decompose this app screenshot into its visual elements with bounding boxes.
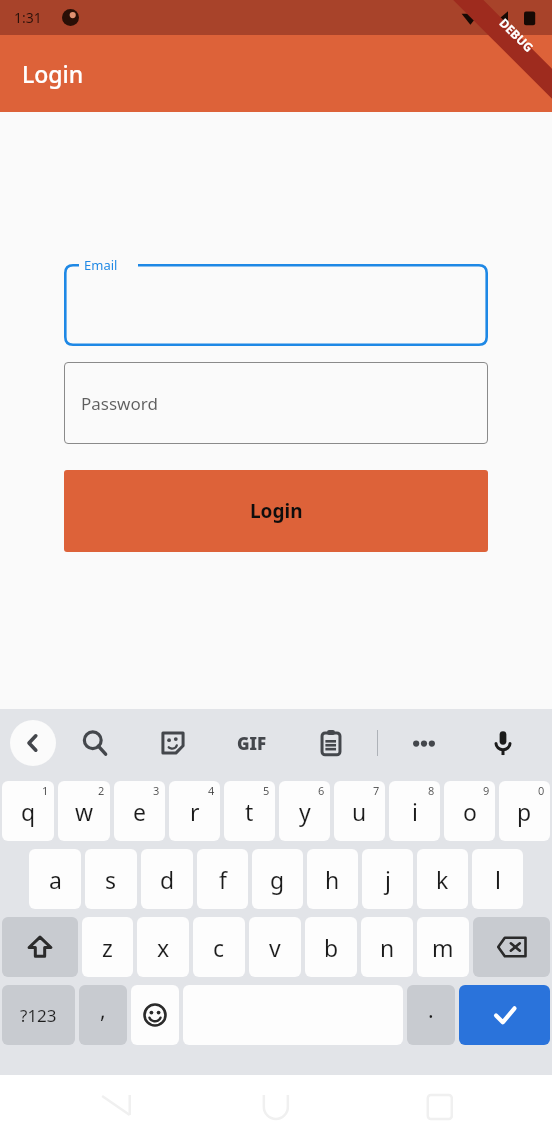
staticText: 0 — [538, 783, 545, 798]
button[interactable]: q — [2, 781, 54, 841]
staticText: ?123 — [20, 1004, 57, 1027]
staticText: , — [100, 996, 106, 1025]
staticText: Login — [250, 498, 303, 524]
staticText: m — [432, 932, 454, 963]
staticText: Email — [84, 256, 118, 274]
staticText: c — [213, 932, 225, 963]
button[interactable]: n — [361, 917, 413, 977]
button[interactable]: s — [85, 849, 137, 909]
staticText: p — [517, 796, 532, 827]
button[interactable]: c — [193, 917, 245, 977]
staticText: 7 — [373, 783, 380, 798]
staticText: k — [436, 864, 449, 895]
button[interactable]: Password — [64, 362, 488, 444]
button[interactable]: x — [137, 917, 189, 977]
staticText: o — [463, 796, 477, 827]
button[interactable]: i — [389, 781, 440, 841]
button[interactable]: f — [197, 849, 248, 909]
staticText: v — [269, 932, 281, 963]
staticText: x — [157, 932, 170, 963]
staticText: 5 — [263, 783, 270, 798]
staticText: u — [352, 796, 367, 827]
button[interactable]: r — [169, 781, 220, 841]
staticText: f — [219, 864, 227, 895]
button[interactable]: Login — [64, 470, 488, 552]
staticText: 1 — [42, 783, 49, 798]
button[interactable]: Clipboard — [291, 709, 370, 777]
staticText: y — [299, 796, 311, 827]
button[interactable]: o — [444, 781, 495, 841]
button[interactable]: p — [499, 781, 550, 841]
button[interactable]: Voice input — [463, 709, 542, 777]
staticText: s — [105, 864, 117, 895]
button[interactable]: d — [141, 849, 193, 909]
button[interactable]: Emoji — [131, 985, 179, 1045]
button[interactable]: h — [307, 849, 358, 909]
staticText: 9 — [483, 783, 490, 798]
button[interactable]: u — [334, 781, 385, 841]
staticText: e — [133, 796, 146, 827]
button[interactable]: ?123 — [2, 985, 75, 1045]
button[interactable]: Stickers — [134, 709, 212, 777]
staticText: g — [270, 864, 285, 895]
staticText: j — [385, 864, 391, 895]
staticText: Password — [81, 392, 158, 415]
button[interactable]: Search — [56, 709, 134, 777]
staticText: Login — [22, 58, 84, 89]
staticText: 3 — [153, 783, 160, 798]
staticText: d — [160, 864, 175, 895]
button[interactable]: z — [82, 917, 133, 977]
staticText: 1:31 — [14, 8, 42, 27]
staticText: n — [380, 932, 395, 963]
button[interactable]: Back — [10, 720, 56, 766]
staticText: h — [325, 864, 340, 895]
staticText: q — [21, 796, 36, 827]
staticText: . — [428, 996, 434, 1025]
button[interactable]: Backspace — [473, 917, 550, 977]
button[interactable]: y — [279, 781, 330, 841]
button[interactable]: Shift — [2, 917, 78, 977]
button[interactable]: b — [305, 917, 357, 977]
button[interactable]: w — [58, 781, 110, 841]
staticText: 2 — [98, 783, 105, 798]
button[interactable]: e — [114, 781, 165, 841]
staticText: w — [75, 796, 94, 827]
staticText: r — [190, 796, 200, 827]
staticText: t — [245, 796, 254, 827]
staticText: z — [102, 932, 113, 963]
staticText: GIF — [237, 732, 267, 755]
staticText: l — [495, 864, 501, 895]
button[interactable]: GIF — [212, 709, 291, 777]
staticText: DEBUG — [496, 14, 537, 55]
staticText: a — [49, 864, 62, 895]
button[interactable]: v — [249, 917, 301, 977]
button[interactable]: More options — [384, 709, 463, 777]
button[interactable]: j — [362, 849, 413, 909]
button[interactable]: Enter — [459, 985, 550, 1045]
button[interactable]: m — [417, 917, 469, 977]
staticText: 6 — [318, 783, 325, 798]
staticText: i — [412, 796, 418, 827]
staticText: 4 — [208, 783, 215, 798]
button[interactable]: . — [407, 985, 455, 1045]
staticText: b — [324, 932, 339, 963]
button[interactable]: Email — [64, 264, 488, 346]
button[interactable]: g — [252, 849, 303, 909]
button[interactable]: l — [472, 849, 523, 909]
button[interactable]: a — [29, 849, 81, 909]
staticText: 8 — [428, 783, 435, 798]
button[interactable]: , — [79, 985, 127, 1045]
button[interactable]: t — [224, 781, 275, 841]
button[interactable]: k — [417, 849, 468, 909]
